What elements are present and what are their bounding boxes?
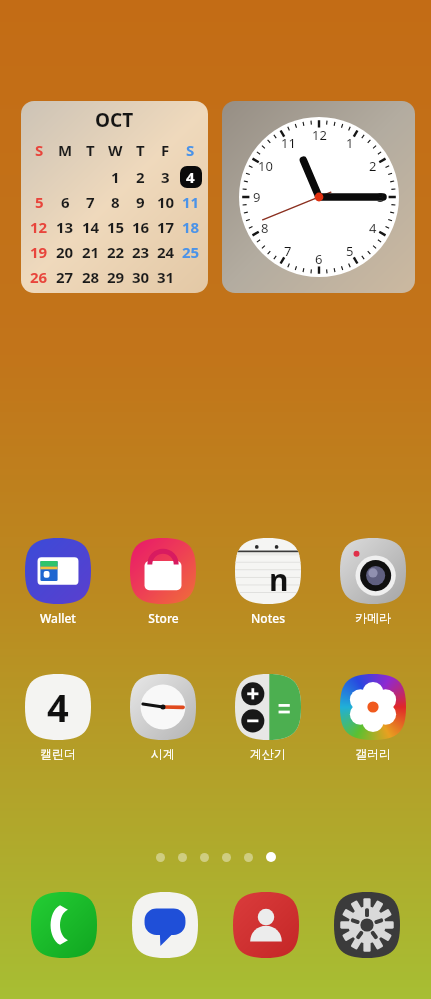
staticText: 카메라 <box>355 610 391 625</box>
staticText: 3 <box>161 167 170 187</box>
button[interactable]: Analog clock <box>222 101 415 293</box>
staticText: 20 <box>56 242 74 262</box>
staticText: 11 <box>281 134 296 152</box>
staticText: 계산기 <box>250 746 286 761</box>
button[interactable]: 계산기 <box>221 674 315 761</box>
staticText: T <box>136 140 145 160</box>
button[interactable]: Phone <box>27 888 101 962</box>
staticText: 18 <box>182 217 200 237</box>
staticText: 7 <box>284 242 292 260</box>
staticText: 6 <box>61 192 70 212</box>
staticText: 28 <box>82 267 100 287</box>
staticText: 갤러리 <box>355 746 391 761</box>
staticText: n <box>269 559 289 600</box>
staticText: M <box>58 140 73 160</box>
button[interactable]: 갤러리 <box>326 674 420 761</box>
staticText: 4 <box>47 681 69 733</box>
staticText: 30 <box>132 267 150 287</box>
button[interactable]: n <box>221 538 315 626</box>
staticText: 4 <box>369 219 377 237</box>
button[interactable]: OCT <box>21 101 208 293</box>
staticText: 13 <box>56 217 74 237</box>
staticText: Store <box>148 610 179 626</box>
staticText: 3 <box>377 188 385 206</box>
staticText: OCT <box>95 107 134 133</box>
staticText: 9 <box>136 192 145 212</box>
button[interactable]: Settings <box>330 888 404 962</box>
staticText: 2 <box>369 157 377 175</box>
staticText: Wallet <box>40 610 76 626</box>
staticText: 22 <box>107 242 125 262</box>
button[interactable]: Store <box>116 538 210 626</box>
staticText: 12 <box>30 217 48 237</box>
staticText: 11 <box>182 192 200 212</box>
staticText: 8 <box>111 192 120 212</box>
staticText: 25 <box>182 242 200 262</box>
button[interactable]: Contacts <box>229 888 303 962</box>
staticText: T <box>86 140 95 160</box>
staticText: 26 <box>30 267 48 287</box>
staticText: 19 <box>30 242 48 262</box>
button[interactable]: Messages <box>128 888 202 962</box>
staticText: 10 <box>157 192 175 212</box>
staticText: 27 <box>56 267 74 287</box>
staticText: S <box>35 140 44 160</box>
staticText: 5 <box>346 242 354 260</box>
staticText: Notes <box>251 610 285 626</box>
staticText: 16 <box>132 217 150 237</box>
staticText: 7 <box>86 192 95 212</box>
staticText: 12 <box>312 126 327 144</box>
staticText: 29 <box>107 267 125 287</box>
staticText: 31 <box>157 267 175 287</box>
staticText: 캘린더 <box>40 746 76 761</box>
staticText: 5 <box>35 192 44 212</box>
staticText: 2 <box>136 167 145 187</box>
staticText: 시계 <box>151 746 175 761</box>
staticText: W <box>108 140 123 160</box>
staticText: 9 <box>253 188 261 206</box>
button[interactable]: 시계 <box>116 674 210 761</box>
staticText: 14 <box>82 217 100 237</box>
button[interactable]: 4 <box>11 674 105 761</box>
button[interactable]: 카메라 <box>326 538 420 625</box>
staticText: 10 <box>258 157 273 175</box>
staticText: 6 <box>315 250 323 268</box>
staticText: 23 <box>132 242 150 262</box>
staticText: 24 <box>157 242 175 262</box>
staticText: 17 <box>157 217 175 237</box>
staticText: 1 <box>111 167 120 187</box>
staticText: 4 <box>186 167 195 187</box>
staticText: S <box>186 140 195 160</box>
staticText: 1 <box>346 134 354 152</box>
button[interactable]: Wallet <box>11 538 105 626</box>
staticText: 21 <box>82 242 100 262</box>
staticText: 8 <box>261 219 269 237</box>
staticText: 15 <box>107 217 125 237</box>
staticText: F <box>161 140 170 160</box>
